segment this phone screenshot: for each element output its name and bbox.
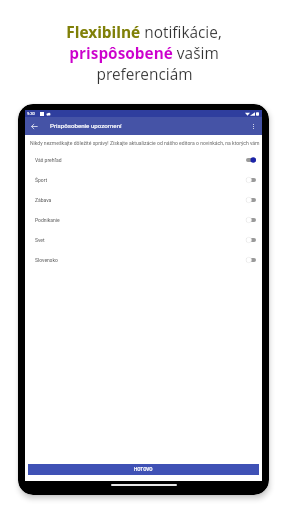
staticText: preferenciám bbox=[96, 64, 193, 85]
button[interactable]: Svet bbox=[25, 230, 262, 250]
staticText: prispôsobené vašim bbox=[69, 43, 219, 64]
staticText: Slovensko bbox=[35, 257, 58, 263]
staticText: Váš prehľad bbox=[35, 157, 62, 163]
staticText: Prispôsobenie upozornení bbox=[50, 122, 122, 129]
button[interactable]: Podnikanie bbox=[25, 210, 262, 230]
staticText: 9:30 bbox=[27, 111, 35, 116]
button[interactable]: Slovensko bbox=[25, 250, 262, 270]
staticText: Podnikanie bbox=[35, 217, 60, 223]
button[interactable]: More options bbox=[244, 117, 262, 135]
staticText: Flexibilné notifikácie, bbox=[66, 22, 222, 43]
button[interactable]: Zábava bbox=[25, 190, 262, 210]
button[interactable]: Šport bbox=[25, 170, 262, 190]
staticText: Šport bbox=[35, 177, 48, 183]
button[interactable]: Váš prehľad bbox=[25, 150, 262, 170]
staticText: Zábava bbox=[35, 197, 52, 203]
button[interactable]: Back bbox=[25, 117, 43, 135]
staticText: Nikdy nezmeškajte dôležité správy! Získa… bbox=[30, 140, 262, 146]
staticText: HOTOVO bbox=[134, 467, 153, 473]
button[interactable]: HOTOVO bbox=[28, 464, 259, 475]
staticText: Svet bbox=[35, 237, 45, 243]
